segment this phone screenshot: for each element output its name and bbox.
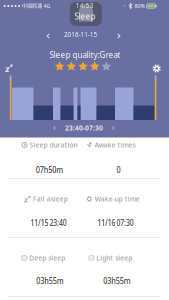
staticText: 0 — [116, 163, 121, 176]
staticText: Light sleep — [96, 254, 132, 262]
button[interactable] — [152, 64, 161, 73]
button[interactable] — [44, 31, 52, 40]
staticText: 11/16 07:30 — [91, 216, 140, 229]
staticText: 03h55m — [32, 274, 67, 287]
staticText: 23:40-07:30 — [65, 124, 103, 132]
staticText: Awake times — [95, 141, 136, 149]
staticText: 03h55m — [99, 274, 134, 287]
button[interactable] — [50, 124, 58, 132]
staticText: 11/15 23:40 — [24, 216, 73, 229]
staticText: 80% — [134, 2, 144, 10]
staticText: Sleep quality:Great — [49, 50, 120, 60]
staticText: Sleep duration — [30, 141, 78, 149]
staticText: 4G — [44, 2, 51, 10]
button[interactable] — [109, 124, 118, 132]
staticText: 14:53 — [75, 1, 93, 10]
staticText: 中国联通 — [22, 3, 42, 9]
button[interactable] — [115, 31, 123, 40]
staticText: ◦ — [122, 2, 126, 10]
staticText: 07h50m — [32, 163, 67, 176]
staticText: Sleep — [74, 11, 95, 22]
staticText: Wake-up time — [95, 195, 140, 203]
staticText: Deep sleep — [29, 254, 65, 262]
button[interactable] — [55, 61, 111, 71]
staticText: Fall asleep — [33, 195, 68, 203]
staticText: 2016-11-15 — [62, 30, 98, 39]
